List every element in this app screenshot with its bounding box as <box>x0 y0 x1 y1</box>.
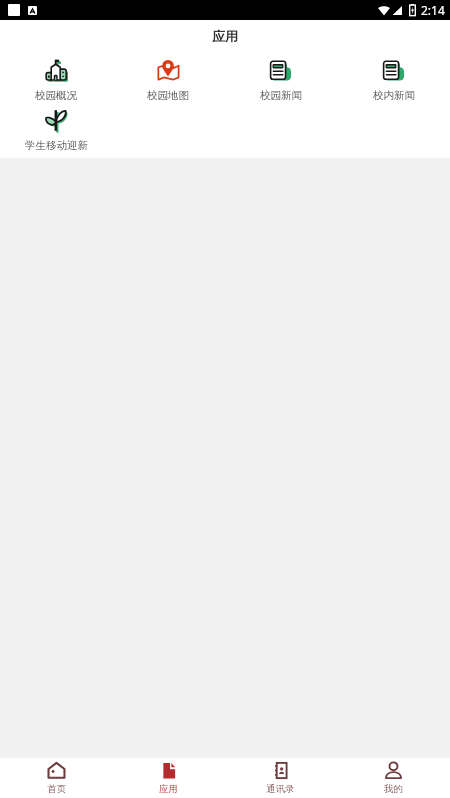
staticText: 2:14 <box>421 2 445 18</box>
staticText: 校内新闻 <box>373 89 415 102</box>
button[interactable]: 学生移动迎新 <box>0 102 112 152</box>
button[interactable]: 首页 <box>0 758 112 798</box>
staticText: 学生移动迎新 <box>25 139 88 152</box>
button[interactable]: 应用 <box>112 758 224 798</box>
staticText: 应用 <box>212 28 238 44</box>
staticText: 校园概况 <box>35 89 77 102</box>
staticText: 通讯录 <box>266 783 295 795</box>
button[interactable]: 校内新闻 <box>337 50 450 102</box>
staticText: 应用 <box>159 783 178 795</box>
staticText: 校园新闻 <box>260 89 302 102</box>
button[interactable]: 我的 <box>337 758 450 798</box>
staticText: 首页 <box>47 783 66 795</box>
button[interactable]: 校园概况 <box>0 50 112 102</box>
button[interactable]: 校园地图 <box>112 50 224 102</box>
button[interactable]: 校园新闻 <box>224 50 337 102</box>
button[interactable]: 通讯录 <box>224 758 337 798</box>
staticText: 校园地图 <box>147 89 189 102</box>
staticText: 我的 <box>384 783 403 795</box>
